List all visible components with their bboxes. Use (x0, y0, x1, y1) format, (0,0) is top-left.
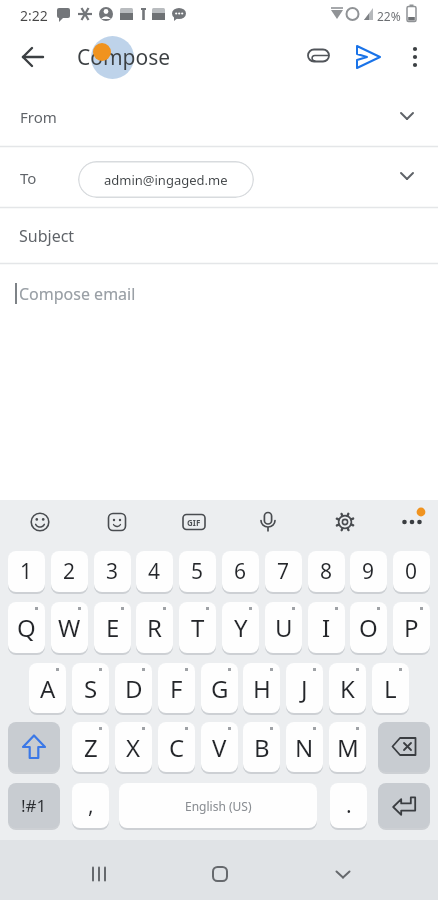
button[interactable] (297, 36, 339, 78)
staticText: 2 (63, 557, 76, 586)
staticText: !#1 (21, 794, 47, 817)
button[interactable]: V (201, 722, 238, 772)
staticText: , (88, 791, 94, 820)
staticText: P (404, 611, 419, 644)
button[interactable]: M (329, 722, 366, 772)
staticText: 6 (234, 557, 247, 586)
button[interactable]: English (US) (119, 783, 317, 828)
button[interactable]: To (0, 147, 438, 207)
button[interactable]: 0 (393, 551, 430, 592)
button[interactable]: Subject (0, 208, 438, 263)
button[interactable]: 6 (222, 551, 259, 592)
button[interactable] (97, 502, 137, 542)
button[interactable] (20, 502, 60, 542)
button[interactable]: S (72, 663, 109, 713)
staticText: 2:22 (20, 6, 48, 25)
button[interactable] (200, 854, 240, 894)
staticText: K (340, 672, 355, 705)
staticText: O (359, 611, 378, 644)
button[interactable] (378, 722, 430, 772)
button[interactable] (8, 722, 60, 772)
button[interactable]: B (243, 722, 280, 772)
staticText: D (125, 672, 143, 705)
button[interactable] (347, 36, 389, 78)
button[interactable] (392, 502, 432, 542)
button[interactable]: 3 (94, 551, 131, 592)
button[interactable]: O (350, 602, 387, 653)
staticText: E (106, 611, 120, 644)
button[interactable]: 2 (51, 551, 88, 592)
button[interactable]: E (94, 602, 131, 653)
staticText: H (253, 672, 271, 705)
button[interactable]: J (286, 663, 323, 713)
button[interactable] (323, 854, 363, 894)
staticText: I (322, 611, 331, 644)
button[interactable]: F (158, 663, 195, 713)
button[interactable]: !#1 (8, 783, 60, 828)
button[interactable]: Y (222, 602, 259, 653)
staticText: admin@ingaged.me (104, 171, 228, 189)
staticText: N (295, 731, 314, 764)
staticText: Y (234, 611, 248, 644)
button[interactable]: C (158, 722, 195, 772)
button[interactable] (12, 36, 54, 78)
staticText: V (212, 731, 227, 764)
button[interactable]: From (0, 90, 438, 146)
staticText: C (169, 731, 185, 764)
button[interactable] (397, 36, 435, 74)
button[interactable]: T (179, 602, 216, 653)
button[interactable]: . (330, 783, 367, 828)
button[interactable]: K (329, 663, 366, 713)
button[interactable]: G (201, 663, 238, 713)
button[interactable]: 8 (308, 551, 345, 592)
staticText: X (126, 731, 141, 764)
staticText: Subject (19, 225, 75, 247)
staticText: J (301, 672, 308, 705)
staticText: R (147, 611, 162, 644)
staticText: 5 (191, 557, 204, 586)
button[interactable]: R (136, 602, 173, 653)
staticText: . (346, 791, 352, 820)
staticText: English (US) (185, 798, 252, 814)
button[interactable]: Q (8, 602, 45, 653)
staticText: 4 (148, 557, 161, 586)
staticText: 8 (320, 557, 333, 586)
button[interactable]: N (286, 722, 323, 772)
button[interactable] (79, 854, 119, 894)
button[interactable]: Z (72, 722, 109, 772)
staticText: From (20, 107, 57, 127)
staticText: M (337, 731, 359, 764)
staticText: F (170, 672, 183, 705)
button[interactable]: 5 (179, 551, 216, 592)
button[interactable]: 1 (8, 551, 45, 592)
staticText: 7 (277, 557, 290, 586)
button[interactable]: admin@ingaged.me (78, 161, 254, 198)
button[interactable]: 4 (136, 551, 173, 592)
button[interactable]: I (308, 602, 345, 653)
staticText: 22% (377, 8, 401, 24)
button[interactable]: H (243, 663, 280, 713)
button[interactable] (174, 502, 214, 542)
button[interactable]: Compose email (0, 264, 438, 320)
button[interactable]: X (115, 722, 152, 772)
staticText: 3 (106, 557, 119, 586)
button[interactable]: 9 (350, 551, 387, 592)
button[interactable]: D (115, 663, 152, 713)
button[interactable] (325, 502, 365, 542)
staticText: 9 (362, 557, 375, 586)
button[interactable]: P (393, 602, 430, 653)
staticText: A (40, 672, 56, 705)
staticText: 1 (20, 557, 33, 586)
staticText: GIF (187, 517, 201, 528)
button[interactable]: W (51, 602, 88, 653)
button[interactable]: 7 (265, 551, 302, 592)
staticText: To (20, 168, 37, 188)
button[interactable] (378, 783, 430, 828)
staticText: Q (17, 611, 36, 644)
button[interactable]: A (29, 663, 66, 713)
staticText: Z (84, 731, 98, 764)
button[interactable]: , (72, 783, 109, 828)
button[interactable]: U (265, 602, 302, 653)
button[interactable]: L (372, 663, 409, 713)
button[interactable] (248, 502, 288, 542)
